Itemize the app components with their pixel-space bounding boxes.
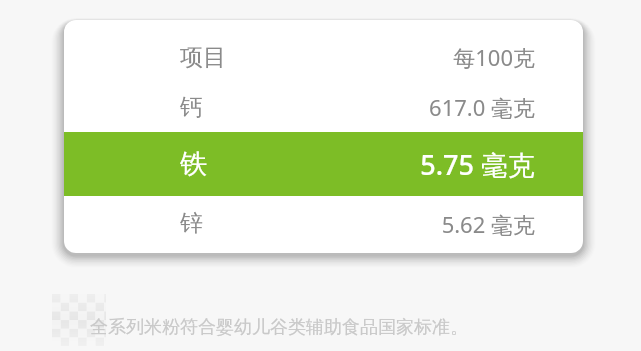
staticText: 每100克 [453,42,535,72]
staticText: 铁 [180,147,207,181]
staticText: 钙 [180,93,203,122]
staticText: 617.0 毫克 [429,92,535,122]
button[interactable]: 项目 [64,32,583,82]
staticText: 项目 [180,43,226,72]
button[interactable]: 铁 [64,132,583,196]
button[interactable]: 锌 [64,196,583,251]
button[interactable]: 钙 [64,82,583,132]
staticText: 5.62 毫克 [441,209,535,239]
button[interactable]: 全系列米粉符合婴幼儿谷类辅助食品国家标准。 [90,312,480,342]
staticText: 5.75 毫克 [420,146,535,183]
staticText: 锌 [180,209,203,238]
button[interactable]: Image placeholder [52,294,106,346]
staticText: 全系列米粉符合婴幼儿谷类辅助食品国家标准。 [90,316,468,339]
